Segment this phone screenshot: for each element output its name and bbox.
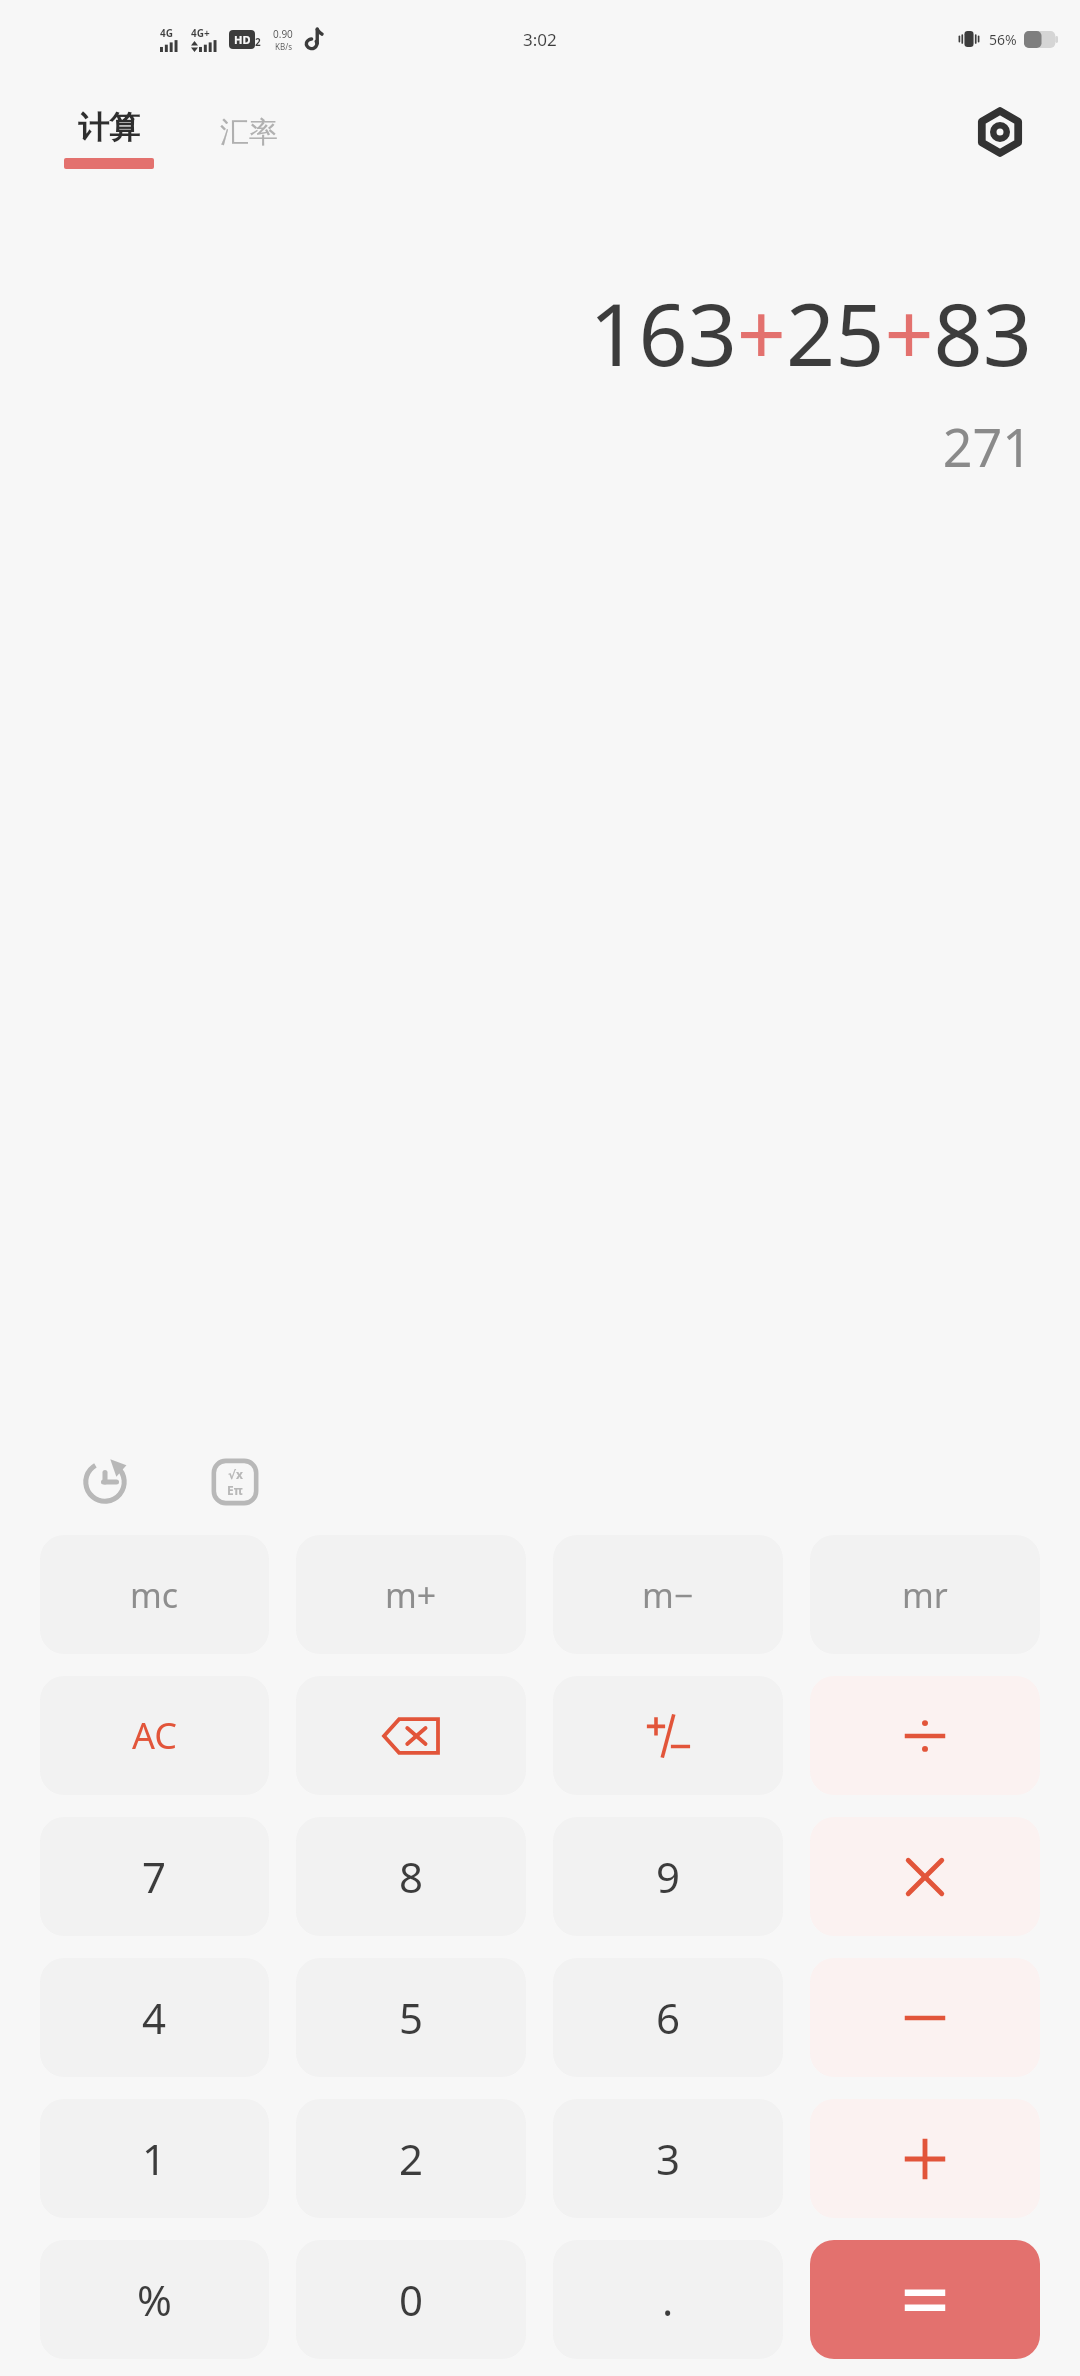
staticText: 4G+ bbox=[191, 26, 210, 40]
staticText: 271 bbox=[942, 411, 1032, 482]
staticText: 6 bbox=[656, 1989, 681, 2046]
staticText: 4G bbox=[160, 26, 173, 40]
staticText: AC bbox=[132, 1711, 178, 1760]
staticText: 5 bbox=[399, 1989, 424, 2046]
button[interactable]: 9 bbox=[553, 1817, 783, 1936]
button[interactable]: m− bbox=[553, 1535, 783, 1654]
staticText: √x bbox=[228, 1466, 243, 1482]
staticText: % bbox=[137, 2271, 172, 2328]
button[interactable]: 1 bbox=[40, 2099, 269, 2218]
staticText: 汇率 bbox=[220, 114, 278, 151]
staticText: 计算 bbox=[78, 108, 140, 147]
button[interactable]: mr bbox=[810, 1535, 1040, 1654]
staticText: HD bbox=[234, 32, 251, 47]
staticText: . bbox=[662, 2271, 674, 2328]
button[interactable]: Scientific calculator bbox=[204, 1451, 266, 1513]
staticText: 0 bbox=[399, 2271, 424, 2328]
staticText: KB/s bbox=[275, 41, 292, 52]
button[interactable]: History bbox=[74, 1451, 136, 1513]
button[interactable]: % bbox=[40, 2240, 269, 2359]
button[interactable]: 8 bbox=[296, 1817, 526, 1936]
staticText: 2 bbox=[255, 35, 261, 49]
button[interactable]: 计算 bbox=[60, 108, 158, 169]
button[interactable]: . bbox=[553, 2240, 783, 2359]
staticText: 2 bbox=[399, 2130, 424, 2187]
button[interactable]: 6 bbox=[553, 1958, 783, 2077]
button[interactable]: 5 bbox=[296, 1958, 526, 2077]
button[interactable]: 3 bbox=[553, 2099, 783, 2218]
button[interactable]: 汇率 bbox=[216, 120, 282, 157]
button[interactable]: 7 bbox=[40, 1817, 269, 1936]
button[interactable]: 4 bbox=[40, 1958, 269, 2077]
staticText: 0.90 bbox=[273, 27, 293, 41]
button[interactable]: Plus minus bbox=[553, 1676, 783, 1795]
staticText: mr bbox=[902, 1572, 948, 1618]
staticText: mc bbox=[130, 1572, 179, 1618]
staticText: m+ bbox=[385, 1572, 437, 1618]
staticText: 9 bbox=[656, 1848, 681, 1905]
button[interactable]: Backspace bbox=[296, 1676, 526, 1795]
staticText: m− bbox=[642, 1572, 694, 1618]
button[interactable]: 0 bbox=[296, 2240, 526, 2359]
staticText: Eπ bbox=[227, 1482, 243, 1498]
staticText: 8 bbox=[399, 1848, 424, 1905]
button[interactable]: Multiply bbox=[810, 1817, 1040, 1936]
button[interactable]: Minus bbox=[810, 1958, 1040, 2077]
staticText: 163+25+83 bbox=[589, 274, 1032, 391]
staticText: 4 bbox=[142, 1989, 167, 2046]
button[interactable]: Plus bbox=[810, 2099, 1040, 2218]
staticText: 56% bbox=[989, 30, 1017, 49]
staticText: 3 bbox=[656, 2130, 681, 2187]
staticText: 7 bbox=[142, 1848, 167, 1905]
staticText: 1 bbox=[142, 2130, 167, 2187]
button[interactable]: 2 bbox=[296, 2099, 526, 2218]
button[interactable]: mc bbox=[40, 1535, 269, 1654]
button[interactable]: Equals bbox=[810, 2240, 1040, 2359]
staticText: 3:02 bbox=[523, 28, 557, 51]
button[interactable]: AC bbox=[40, 1676, 269, 1795]
button[interactable]: m+ bbox=[296, 1535, 526, 1654]
button[interactable]: Settings bbox=[968, 100, 1032, 164]
button[interactable]: Divide bbox=[810, 1676, 1040, 1795]
